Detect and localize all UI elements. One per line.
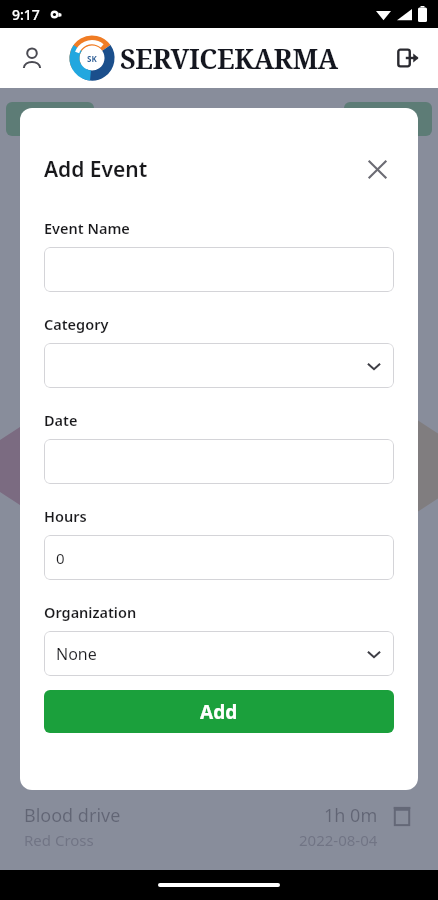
- button[interactable]: [6, 102, 94, 136]
- button[interactable]: Delete event: [390, 804, 414, 828]
- button[interactable]: Close: [360, 152, 394, 186]
- staticText: 0: [56, 548, 65, 568]
- staticText: Add Event: [44, 155, 148, 184]
- staticText: SK: [87, 53, 97, 64]
- staticText: Category: [44, 314, 109, 334]
- button[interactable]: Blood drive: [0, 799, 438, 854]
- staticText: SERVICEKARMA: [120, 40, 338, 77]
- staticText: Add: [200, 699, 238, 725]
- button[interactable]: [44, 439, 394, 484]
- staticText: Blood drive: [24, 803, 121, 828]
- button[interactable]: [44, 343, 394, 388]
- staticText: Date: [44, 410, 78, 430]
- staticText: 9:17: [12, 5, 40, 24]
- staticText: Organization: [44, 602, 137, 622]
- staticText: 1h 0m: [324, 803, 378, 828]
- staticText: Hours: [44, 506, 87, 526]
- button[interactable]: SK: [68, 34, 338, 82]
- staticText: Red Cross: [24, 830, 94, 850]
- button[interactable]: [344, 102, 432, 136]
- staticText: None: [56, 643, 97, 665]
- button[interactable]: Add: [44, 690, 394, 733]
- button[interactable]: None: [44, 631, 394, 676]
- button[interactable]: [44, 247, 394, 292]
- staticText: 2022-08-04: [299, 830, 378, 850]
- staticText: Event Name: [44, 218, 130, 238]
- button[interactable]: Logout: [386, 36, 430, 80]
- button[interactable]: 0: [44, 535, 394, 580]
- button[interactable]: Profile: [10, 36, 54, 80]
